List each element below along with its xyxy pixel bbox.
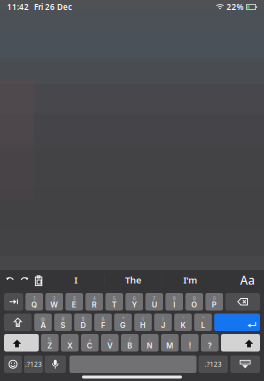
staticText: 3: [73, 295, 76, 301]
staticText: K: [180, 321, 185, 330]
staticText: H: [140, 321, 146, 330]
staticText: +: [88, 336, 91, 342]
button[interactable]: A: [34, 313, 52, 331]
staticText: ;: [149, 336, 150, 342]
button[interactable]: Z: [41, 334, 59, 351]
staticText: D: [80, 321, 85, 330]
button[interactable]: Aa: [231, 270, 264, 290]
staticText: G: [120, 321, 126, 330]
staticText: T: [112, 300, 117, 309]
button[interactable]: Undo: [4, 276, 15, 286]
staticText: Fri 26 Dec: [34, 2, 72, 12]
button[interactable]: I'm: [162, 270, 219, 290]
button[interactable]: Tab: [4, 293, 23, 310]
button[interactable]: Redo: [19, 276, 30, 286]
button[interactable]: Delete: [225, 293, 260, 310]
staticText: I: [74, 274, 77, 286]
staticText: L: [201, 321, 205, 330]
staticText: /: [129, 336, 131, 342]
staticText: :: [169, 336, 170, 342]
staticText: S: [60, 321, 65, 330]
button[interactable]: Caps Lock: [4, 313, 32, 331]
staticText: I'm: [183, 274, 197, 286]
button[interactable]: V: [101, 334, 119, 351]
staticText: .: [209, 336, 210, 342]
button[interactable]: Dictation: [44, 355, 66, 373]
staticText: P: [212, 300, 217, 309]
staticText: Q: [31, 300, 37, 309]
staticText: “: [202, 316, 204, 322]
button[interactable]: Y: [125, 293, 143, 310]
button[interactable]: Shift: [4, 334, 39, 351]
button[interactable]: K: [174, 313, 192, 331]
staticText: Y: [132, 300, 137, 309]
button[interactable]: T: [105, 293, 123, 310]
button[interactable]: J: [154, 313, 172, 331]
staticText: @: [40, 316, 45, 322]
staticText: ,: [189, 336, 190, 342]
button[interactable]: Shift: [221, 334, 260, 351]
button[interactable]: Q: [25, 293, 43, 310]
staticText: V: [107, 341, 112, 350]
button[interactable]: U: [145, 293, 163, 310]
button[interactable]: M: [161, 334, 179, 351]
staticText: E: [72, 300, 77, 309]
staticText: Aa: [240, 272, 255, 288]
button[interactable]: Emoji: [4, 355, 22, 373]
button[interactable]: !: [181, 334, 199, 351]
staticText: J: [161, 321, 165, 330]
staticText: #: [61, 316, 64, 322]
button[interactable]: The: [104, 270, 162, 290]
button[interactable]: Return: [214, 313, 260, 331]
button[interactable]: Numbers: [24, 355, 43, 373]
button[interactable]: R: [85, 293, 103, 310]
staticText: A: [40, 321, 45, 330]
button[interactable]: C: [81, 334, 99, 351]
staticText: *: [122, 316, 124, 322]
staticText: &: [101, 316, 104, 322]
staticText: ): [162, 316, 164, 322]
button[interactable]: D: [74, 313, 92, 331]
staticText: M: [166, 341, 173, 350]
staticText: 2: [53, 295, 56, 301]
staticText: %: [47, 336, 52, 342]
button[interactable]: H: [134, 313, 152, 331]
button[interactable]: Hide Keyboard: [230, 355, 260, 373]
button[interactable]: Numbers: [198, 355, 228, 373]
button[interactable]: L: [194, 313, 212, 331]
staticText: ?: [208, 341, 212, 350]
button[interactable]: O: [185, 293, 203, 310]
staticText: !: [189, 341, 191, 350]
staticText: 6: [133, 295, 136, 301]
staticText: F: [101, 321, 105, 330]
button[interactable]: N: [141, 334, 159, 351]
staticText: 5: [113, 295, 116, 301]
button[interactable]: G: [114, 313, 132, 331]
staticText: W: [50, 300, 58, 309]
button[interactable]: I: [47, 270, 104, 290]
staticText: 0: [213, 295, 216, 301]
staticText: X: [67, 341, 72, 350]
staticText: C: [87, 341, 93, 350]
button[interactable]: W: [45, 293, 63, 310]
staticText: (: [142, 316, 144, 322]
button[interactable]: Paste: [35, 275, 43, 286]
staticText: 22%: [226, 2, 243, 12]
staticText: .?123: [205, 360, 222, 369]
button[interactable]: ?: [201, 334, 219, 351]
staticText: N: [147, 341, 153, 350]
button[interactable]: I: [165, 293, 183, 310]
staticText: 9: [193, 295, 196, 301]
button[interactable]: S: [54, 313, 72, 331]
staticText: 4: [93, 295, 96, 301]
staticText: B: [127, 341, 132, 350]
staticText: I: [173, 300, 175, 309]
button[interactable]: F: [94, 313, 112, 331]
button[interactable]: E: [65, 293, 83, 310]
staticText: R: [92, 300, 97, 309]
staticText: 1: [33, 295, 35, 301]
button[interactable]: B: [121, 334, 139, 351]
button[interactable]: P: [205, 293, 223, 310]
button[interactable]: X: [61, 334, 79, 351]
